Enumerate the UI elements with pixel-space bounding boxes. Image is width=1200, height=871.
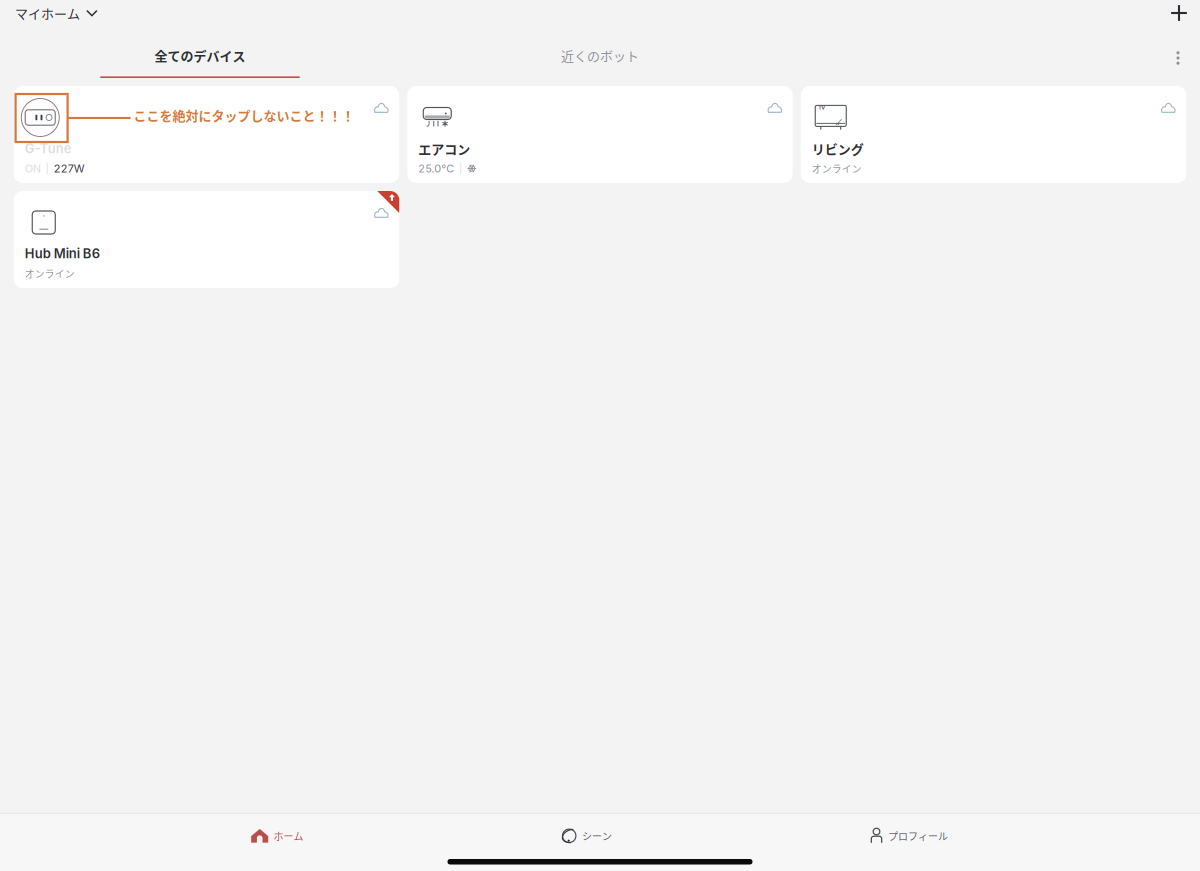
staticText: リビング (812, 139, 864, 158)
staticText: マイホーム (15, 4, 80, 22)
button[interactable]: Hub Mini B6 (14, 191, 399, 288)
button[interactable]: More options (1160, 47, 1196, 69)
button[interactable]: ホーム (251, 825, 303, 847)
staticText: ここを絶対にタップしないこと！！！ (134, 106, 355, 124)
staticText: G-Tune (25, 141, 72, 156)
staticText: オンライン (812, 161, 862, 176)
staticText: エアコン (418, 139, 470, 158)
button[interactable]: プロフィール (870, 825, 948, 847)
staticText: 全てのデバイス (154, 46, 245, 65)
staticText: プロフィール (888, 829, 948, 843)
button[interactable]: 近くのボット (400, 26, 800, 78)
button[interactable]: 全てのデバイス (0, 26, 400, 78)
button[interactable]: マイホーム (15, 0, 98, 26)
staticText: TV (818, 104, 825, 111)
staticText: オンライン (25, 266, 75, 281)
staticText: シーン (582, 829, 612, 843)
staticText: ホーム (273, 829, 303, 843)
staticText: ON (25, 162, 41, 175)
button[interactable]: TV (801, 86, 1186, 183)
staticText: 227W (54, 162, 85, 175)
staticText: 25.0°C (418, 162, 454, 175)
button[interactable]: シーン (561, 825, 612, 847)
button[interactable]: エアコン (407, 86, 793, 183)
button[interactable]: G-Tune (14, 86, 399, 183)
staticText: 近くのボット (561, 46, 639, 65)
button[interactable]: Add device (1159, 0, 1199, 26)
staticText: Hub Mini B6 (25, 246, 100, 261)
